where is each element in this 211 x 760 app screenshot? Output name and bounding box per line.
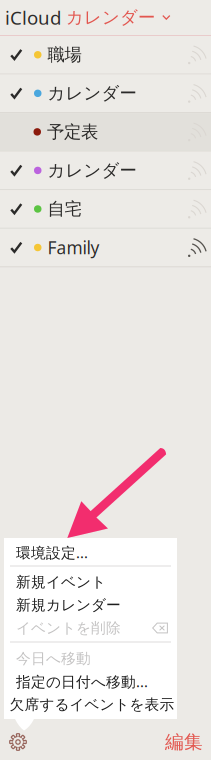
button[interactable]: カレンダー (0, 152, 211, 189)
button[interactable]: 設定 (0, 725, 36, 759)
staticText: 予定表 (47, 121, 98, 142)
button[interactable]: 自宅 (0, 190, 211, 228)
staticText: Family (47, 236, 99, 259)
staticText: 職場 (47, 44, 81, 65)
button[interactable]: 予定表 (0, 113, 211, 151)
staticText: イベントを削除 (16, 619, 121, 637)
button[interactable]: イベントを削除 (4, 616, 177, 639)
button[interactable]: Family (0, 229, 211, 266)
staticText: 欠席するイベントを表示 (9, 695, 174, 713)
staticText: カレンダー (47, 83, 136, 104)
staticText: iCloud (5, 5, 61, 30)
button[interactable]: 指定の日付へ移動... (4, 670, 177, 693)
staticText: 新規カレンダー (16, 596, 121, 614)
staticText: カレンダー (47, 160, 136, 181)
button[interactable]: 環境設定... (4, 541, 177, 564)
staticText: 編集 (165, 730, 203, 753)
button[interactable]: 新規イベント (4, 570, 177, 593)
staticText: カレンダー (66, 7, 155, 28)
staticText: 自宅 (47, 198, 81, 220)
button[interactable]: 欠席するイベントを表示 (4, 693, 177, 716)
button[interactable]: 新規カレンダー (4, 593, 177, 616)
staticText: 指定の日付へ移動... (16, 672, 148, 691)
staticText: 今日へ移動 (16, 649, 91, 667)
button[interactable]: 職場 (0, 36, 211, 73)
button[interactable]: iCloud (0, 0, 211, 35)
button[interactable]: 編集 (159, 725, 209, 759)
staticText: 環境設定... (16, 543, 88, 562)
staticText: 新規イベント (16, 573, 106, 591)
button[interactable]: 今日へ移動 (4, 647, 177, 670)
button[interactable]: カレンダー (0, 74, 211, 112)
